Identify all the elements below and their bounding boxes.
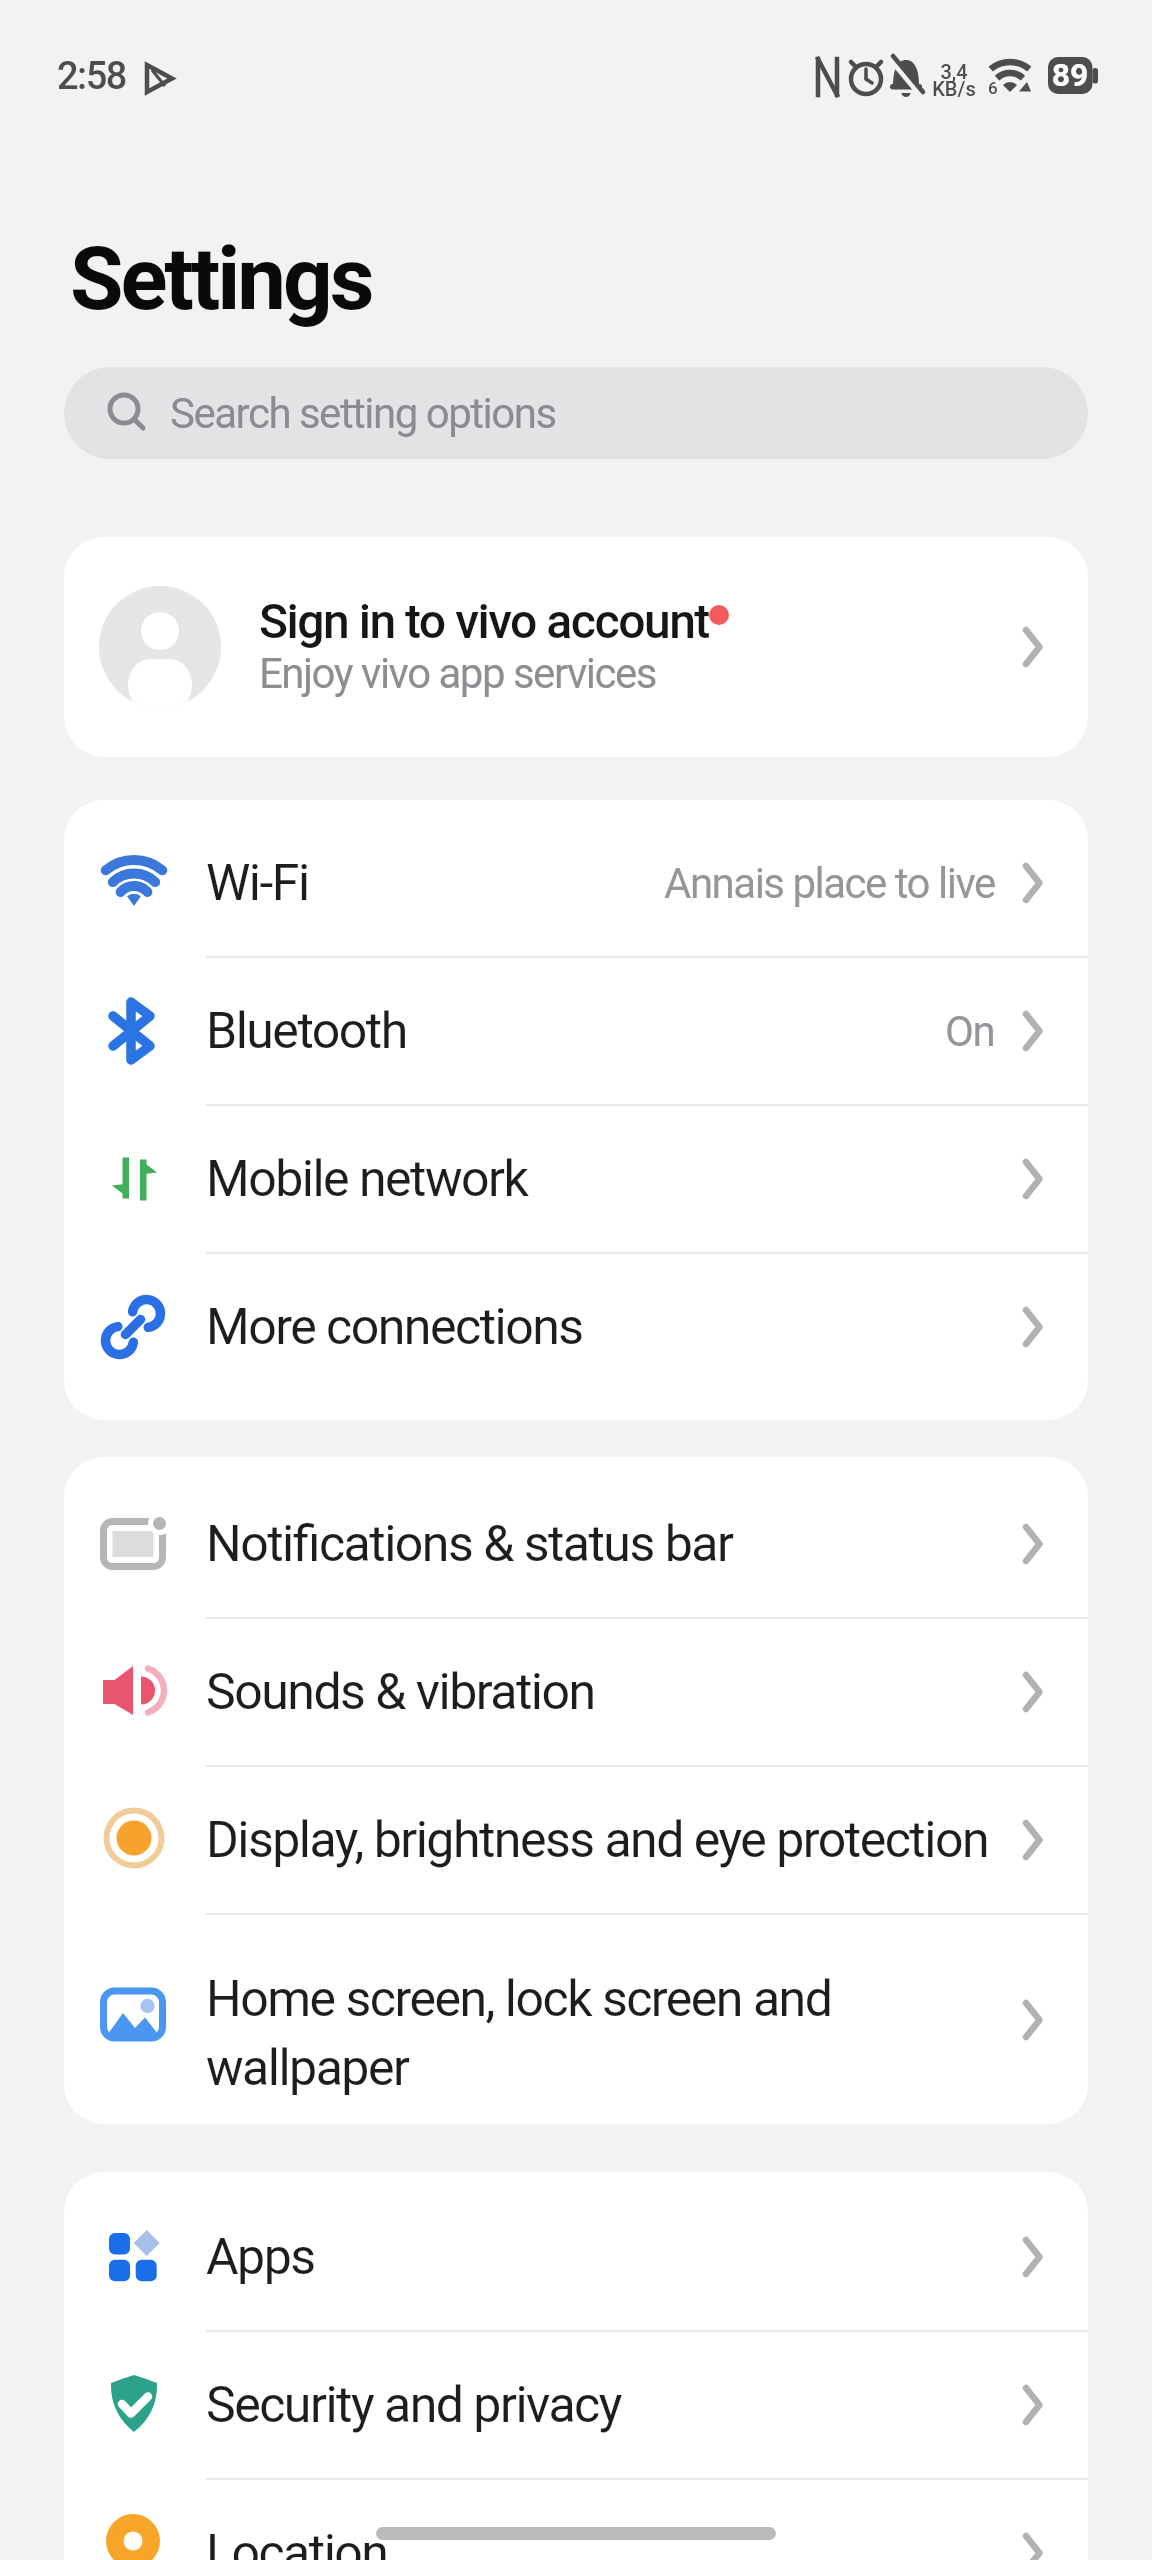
button[interactable]: More connections xyxy=(64,1254,1088,1400)
staticText: More connections xyxy=(206,1298,583,1357)
staticText: Apps xyxy=(206,2228,315,2287)
staticText: Wi-Fi xyxy=(206,854,309,913)
staticText: Search setting options xyxy=(170,389,556,438)
button[interactable]: Display, brightness and eye protection xyxy=(64,1767,1088,1913)
staticText: Bluetooth xyxy=(206,1002,407,1061)
staticText: Location xyxy=(206,2524,388,2560)
button[interactable]: Notifications & status bar xyxy=(64,1471,1088,1617)
button[interactable]: Apps xyxy=(64,2184,1088,2330)
staticText: Mobile network xyxy=(206,1150,528,1209)
staticText: Display, brightness and eye protection xyxy=(206,1811,989,1870)
staticText: Annais place to live xyxy=(664,859,995,908)
staticText: 2:58 xyxy=(57,54,126,99)
button[interactable]: Sign in to vivo account xyxy=(64,537,1088,757)
staticText: On xyxy=(945,1007,995,1056)
staticText: Home screen, lock screen and wallpaper xyxy=(206,1970,995,2097)
button[interactable]: Mobile network xyxy=(64,1106,1088,1252)
button[interactable]: Sounds & vibration xyxy=(64,1619,1088,1765)
staticText: Settings xyxy=(70,228,372,330)
button[interactable]: Home screen, lock screen and wallpaper xyxy=(64,1915,1088,2124)
staticText: Notifications & status bar xyxy=(206,1515,733,1574)
staticText: 89 xyxy=(1048,56,1092,94)
staticText: Enjoy vivo app services xyxy=(259,649,656,698)
staticText: 3,4 KB/s xyxy=(922,60,986,101)
staticText: 6 xyxy=(988,78,998,98)
button[interactable]: Search setting options xyxy=(64,367,1088,459)
staticText: Sounds & vibration xyxy=(206,1663,595,1722)
button[interactable]: Security and privacy xyxy=(64,2332,1088,2478)
staticText: Security and privacy xyxy=(206,2376,621,2435)
button[interactable]: Location xyxy=(64,2480,1088,2560)
button[interactable]: Bluetooth xyxy=(64,958,1088,1104)
button[interactable]: Wi-Fi xyxy=(64,810,1088,956)
staticText: Sign in to vivo account xyxy=(259,593,709,649)
